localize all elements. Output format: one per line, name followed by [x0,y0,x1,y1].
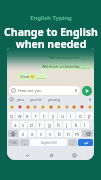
staticText: j [66,122,68,128]
button[interactable]: Great 🙂 [18,73,47,80]
staticText: a [14,122,17,128]
button[interactable]: z [19,130,27,137]
staticText: p [88,113,91,119]
button[interactable]: v [46,130,54,137]
staticText: z [22,131,25,137]
staticText: Great 🙂 [20,74,35,79]
button[interactable]: p [85,112,93,119]
staticText: g [48,122,51,128]
staticText: i [70,113,72,119]
button[interactable]: you're [29,97,43,102]
button[interactable]: English (US) [30,139,67,146]
button[interactable]: Emoji [87,104,92,109]
button[interactable]: n [64,130,72,137]
button[interactable]: Emoji [40,104,45,109]
staticText: q [10,113,13,119]
staticText: m [75,131,80,137]
staticText: Change to English when needed [4,25,98,51]
staticText: r [35,113,37,119]
staticText: s [22,122,25,128]
staticText: How are you [18,88,42,93]
button[interactable]: k [72,121,80,128]
button[interactable]: y [49,112,57,119]
button[interactable]: Will finish on Saturday [40,63,92,70]
staticText: b [58,131,61,137]
button[interactable]: w [16,112,23,119]
button[interactable]: young [47,97,61,102]
staticText: ?123 [10,141,17,145]
button[interactable]: Recents [70,151,78,159]
button[interactable]: Keyboard menu [9,97,14,102]
staticText: you're [30,97,42,102]
button[interactable]: Emoji [71,104,76,109]
button[interactable]: Emoji [64,104,69,109]
button[interactable]: Not working since [47,54,92,61]
button[interactable]: Back [23,151,31,159]
button[interactable]: Home [47,151,55,159]
button[interactable]: l [81,121,89,128]
staticText: h [57,122,60,128]
button[interactable]: a [12,121,19,128]
button[interactable]: d [28,121,35,128]
staticText: , [24,140,26,146]
button[interactable]: ?123 [8,139,19,146]
staticText: n [67,131,70,137]
button[interactable]: Enter [78,139,93,146]
staticText: u [61,113,64,119]
button[interactable]: x [28,130,36,137]
button[interactable]: c [37,130,45,137]
staticText: . [72,140,74,146]
button[interactable]: Emoji [79,104,84,109]
staticText: v [49,131,52,137]
button[interactable]: , [20,139,29,146]
staticText: e [26,113,29,119]
button[interactable]: Emoji [32,104,37,109]
button[interactable]: h [54,121,62,128]
staticText: t [43,113,45,119]
button[interactable]: Emoji [9,104,14,109]
button[interactable]: Shift [8,130,18,137]
button[interactable]: r [32,112,39,119]
staticText: k [75,122,78,128]
staticText: o [79,113,82,119]
staticText: d [30,122,33,128]
button[interactable]: How are you [9,86,80,95]
staticText: c [40,131,43,137]
staticText: 4:30 PM [81,57,90,60]
button[interactable]: b [55,130,63,137]
staticText: y [52,113,55,119]
staticText: f [39,122,41,128]
button[interactable]: q [8,112,15,119]
button[interactable]: s [20,121,27,128]
staticText: 4:30 PM [36,76,45,79]
button[interactable]: u [58,112,66,119]
staticText: Not working since [49,55,80,60]
button[interactable]: i [67,112,75,119]
button[interactable]: o [76,112,84,119]
button[interactable]: e [24,112,31,119]
staticText: young [48,97,60,102]
staticText: you [17,97,24,102]
button[interactable]: g [45,121,53,128]
staticText: l [84,122,86,128]
staticText: 4:30 PM [81,66,90,69]
button[interactable]: Emoji [25,104,30,109]
staticText: x [31,131,34,137]
staticText: w [18,113,22,119]
button[interactable]: . [68,139,77,146]
button[interactable]: t [40,112,48,119]
button[interactable]: Emoji [56,104,61,109]
staticText: English (US) [41,141,57,145]
button[interactable]: you [16,97,25,102]
staticText: Will finish on Saturday [42,64,80,69]
button[interactable]: Send [82,86,92,96]
button[interactable]: Voice input [87,97,92,102]
button[interactable]: Emoji [17,104,22,109]
button[interactable]: Emoji [48,104,53,109]
button[interactable]: Backspace [82,130,93,137]
button[interactable]: m [73,130,81,137]
button[interactable]: f [36,121,44,128]
button[interactable]: j [63,121,71,128]
staticText: English Typing [30,14,72,22]
